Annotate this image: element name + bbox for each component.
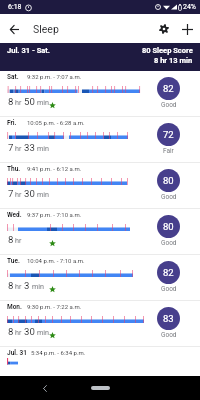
button[interactable]: Thu. bbox=[0, 163, 200, 208]
staticText: hr bbox=[15, 282, 22, 290]
button[interactable]: Mon. bbox=[0, 301, 200, 346]
staticText: Jul. 31 - Sat. bbox=[7, 46, 51, 55]
staticText: 7 bbox=[8, 142, 14, 153]
staticText: 30 bbox=[24, 326, 35, 337]
staticText: 30 bbox=[24, 188, 35, 199]
staticText: Sleep bbox=[33, 23, 59, 35]
button[interactable]: Back bbox=[5, 20, 23, 38]
button[interactable]: Sat. bbox=[0, 71, 200, 116]
staticText: Thu. bbox=[7, 165, 21, 173]
staticText: 72 bbox=[163, 129, 174, 140]
staticText: 9:30 p.m. - 7:22 a.m. bbox=[27, 303, 82, 310]
button[interactable]: Add bbox=[178, 20, 196, 38]
staticText: 6:18 bbox=[8, 3, 22, 11]
button[interactable]: Jul. 31 bbox=[0, 347, 200, 381]
staticText: Good bbox=[161, 239, 177, 247]
staticText: min bbox=[37, 328, 50, 336]
staticText: Wed. bbox=[7, 211, 22, 219]
staticText: Good bbox=[161, 193, 177, 201]
staticText: hr bbox=[15, 190, 22, 198]
staticText: 7 bbox=[8, 188, 14, 199]
staticText: 10:04 p.m. - 7:10 a.m. bbox=[27, 257, 85, 264]
staticText: Sat. bbox=[7, 73, 19, 81]
staticText: 5:34 p.m. - 6:34 p.m. bbox=[31, 349, 86, 356]
staticText: 9:41 p.m. - 6:12 a.m. bbox=[27, 165, 82, 172]
button[interactable]: Fri. bbox=[0, 117, 200, 162]
staticText: hr bbox=[15, 236, 22, 244]
staticText: 8 bbox=[8, 234, 14, 245]
staticText: 3 bbox=[24, 280, 30, 291]
staticText: Mon. bbox=[7, 303, 22, 311]
staticText: hr bbox=[15, 328, 22, 336]
staticText: 82 bbox=[163, 83, 174, 94]
staticText: min bbox=[37, 190, 50, 198]
staticText: min bbox=[37, 98, 50, 106]
button[interactable]: Back bbox=[38, 381, 52, 395]
staticText: 8 bbox=[8, 326, 14, 337]
staticText: 9:37 p.m. - 7:10 a.m. bbox=[27, 211, 82, 218]
staticText: 8 hr 13 min bbox=[154, 56, 193, 65]
staticText: Fri. bbox=[7, 119, 17, 127]
staticText: 33 bbox=[24, 142, 35, 153]
staticText: hr bbox=[15, 98, 22, 106]
button[interactable]: Tue. bbox=[0, 255, 200, 300]
staticText: 50 bbox=[24, 96, 35, 107]
staticText: Jul. 31 bbox=[7, 349, 27, 357]
staticText: Tue. bbox=[7, 257, 20, 265]
staticText: hr bbox=[15, 144, 22, 152]
staticText: 24% bbox=[183, 3, 196, 11]
staticText: 82 bbox=[163, 267, 174, 278]
staticText: 80 Sleep Score bbox=[142, 46, 193, 55]
staticText: 83 bbox=[163, 313, 174, 324]
staticText: min bbox=[37, 144, 50, 152]
staticText: Good bbox=[161, 285, 177, 293]
staticText: Good bbox=[161, 331, 177, 339]
staticText: Good bbox=[161, 101, 177, 109]
staticText: 8 bbox=[8, 280, 14, 291]
staticText: 10:05 p.m. - 6:28 a.m. bbox=[27, 119, 85, 126]
button[interactable]: Home bbox=[91, 386, 110, 390]
staticText: min bbox=[32, 282, 45, 290]
staticText: 8 bbox=[8, 96, 14, 107]
button[interactable]: Wed. bbox=[0, 209, 200, 254]
staticText: 9:32 p.m. - 7:07 a.m. bbox=[27, 73, 82, 80]
staticText: Fair bbox=[163, 147, 174, 155]
staticText: 80 bbox=[163, 221, 174, 232]
staticText: 80 bbox=[163, 175, 174, 186]
button[interactable]: Settings bbox=[155, 20, 173, 38]
